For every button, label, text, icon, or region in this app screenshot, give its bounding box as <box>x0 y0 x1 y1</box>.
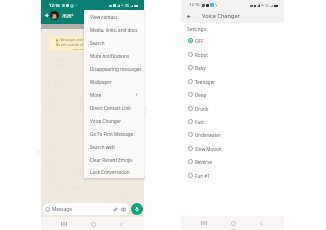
button[interactable]: Mute notifications <box>84 49 144 62</box>
staticText: OFF <box>195 38 204 44</box>
button[interactable]: Back <box>116 219 126 229</box>
staticText: 12:16 <box>189 2 200 8</box>
button[interactable]: Search <box>84 36 144 49</box>
staticText: ЖЖ⁴ <box>62 12 74 19</box>
button[interactable]: Search web <box>84 140 144 153</box>
button[interactable]: Contact photo <box>50 11 59 20</box>
button[interactable]: Wallpaper <box>84 75 144 88</box>
other: Camera <box>121 207 126 212</box>
staticText: Search web <box>90 144 115 150</box>
button[interactable]: Go To First Message <box>84 127 144 140</box>
button[interactable]: Fun #1 <box>181 169 284 182</box>
staticText: 🔒 Messages and calls are end-to-end encr… <box>55 37 131 50</box>
button[interactable]: Home <box>88 219 98 229</box>
staticText: Lock Conversation <box>90 169 130 175</box>
staticText: Robot <box>195 52 208 58</box>
staticText: Underwater <box>195 132 221 138</box>
staticText: Drunk <box>195 106 209 112</box>
button[interactable]: Direct Contact Link <box>84 101 144 114</box>
button[interactable]: Teenager <box>181 75 284 88</box>
staticText: Direct Contact Link <box>90 105 131 111</box>
other: Emoji <box>45 207 50 212</box>
staticText: Disappearing messages <box>90 66 142 72</box>
button[interactable]: Lock Conversation <box>84 166 144 178</box>
staticText: Fast <box>195 119 204 125</box>
staticText: More <box>90 92 102 98</box>
button[interactable]: Voice Changer <box>84 114 144 127</box>
button[interactable]: Disappearing messages <box>84 62 144 75</box>
button[interactable]: Media, links, and docs <box>84 23 144 36</box>
staticText: Clear Recent Emojis <box>90 157 133 163</box>
button[interactable]: Back <box>43 12 50 19</box>
staticText: Wallpaper <box>90 79 112 85</box>
staticText: Deep <box>195 92 207 98</box>
button[interactable]: Fast <box>181 115 284 128</box>
button[interactable]: More <box>84 88 144 101</box>
staticText: Reverse <box>195 159 212 165</box>
button[interactable]: OFF <box>181 34 284 47</box>
button[interactable]: Underwater <box>181 128 284 141</box>
button[interactable]: Back <box>184 12 192 20</box>
button[interactable]: Back <box>256 218 266 228</box>
staticText: 35 <box>125 3 129 8</box>
button[interactable]: Slow Motion <box>181 142 284 155</box>
button[interactable]: Baby <box>181 61 284 74</box>
staticText: Media, links, and docs <box>90 27 138 33</box>
button[interactable]: Robot <box>181 48 284 61</box>
other: Attach <box>113 207 118 212</box>
button[interactable]: View contact <box>84 10 144 23</box>
staticText: Fun #1 <box>195 173 210 179</box>
staticText: 12:16 <box>49 3 60 9</box>
staticText: 35 <box>265 3 269 8</box>
button[interactable]: Drunk <box>181 102 284 115</box>
staticText: Message <box>52 206 72 213</box>
button[interactable]: Reverse <box>181 155 284 168</box>
staticText: Baby <box>195 65 206 71</box>
staticText: Slow Motion <box>195 146 222 152</box>
staticText: Voice Changer <box>90 118 122 124</box>
button[interactable]: Recent apps <box>59 219 69 229</box>
staticText: Teenager <box>195 79 216 85</box>
staticText: Settings <box>187 26 207 33</box>
button[interactable]: Record voice message <box>131 203 143 215</box>
staticText: Go To First Message <box>90 131 134 137</box>
button[interactable]: Deep <box>181 88 284 101</box>
staticText: Voice Changer <box>202 12 240 20</box>
button[interactable]: Emoji <box>43 203 129 215</box>
staticText: Mute notifications <box>90 53 130 59</box>
button[interactable]: Recent apps <box>199 218 209 228</box>
staticText: View contact <box>90 14 118 20</box>
staticText: Search <box>90 40 105 46</box>
button[interactable]: Home <box>228 218 238 228</box>
button[interactable]: Clear Recent Emojis <box>84 153 144 166</box>
